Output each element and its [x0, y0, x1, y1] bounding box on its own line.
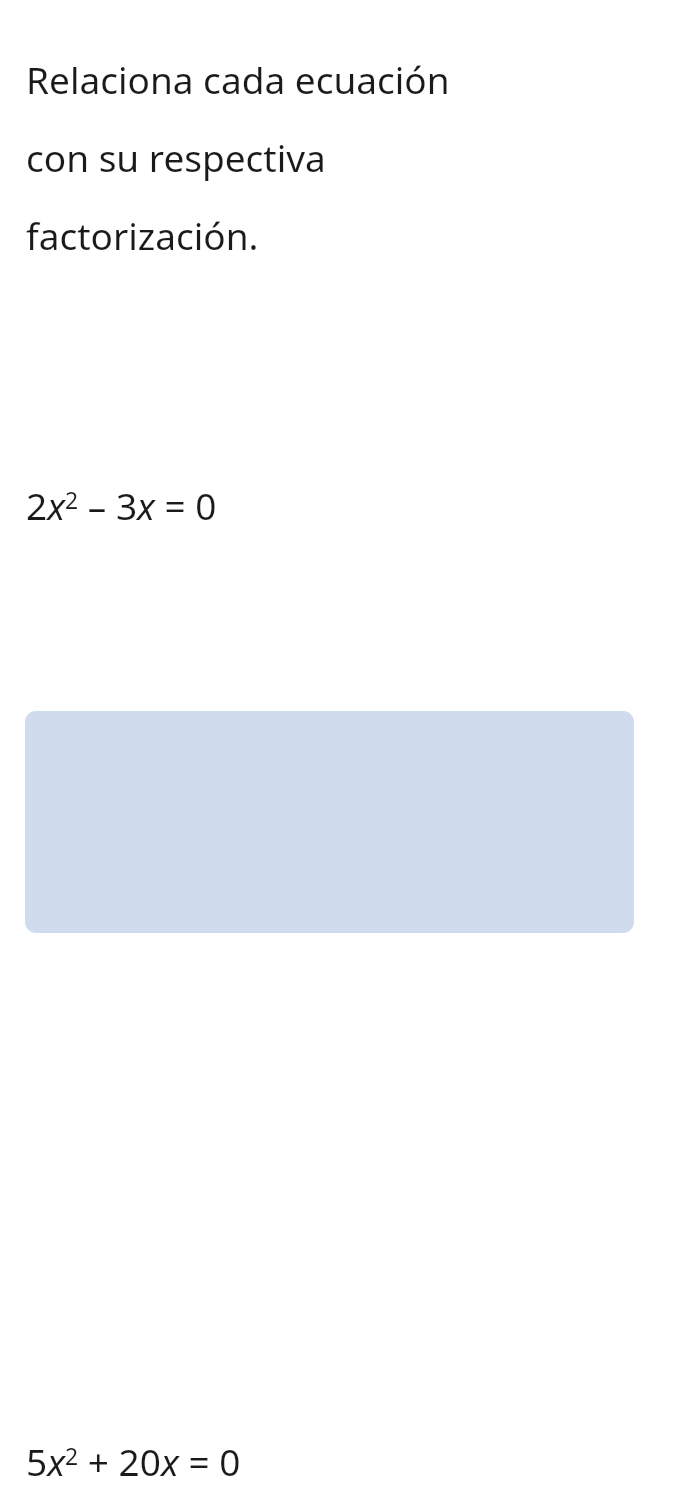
- staticText: con su respectiva: [26, 132, 326, 182]
- staticText: 5x2 + 20x = 0: [26, 1436, 241, 1486]
- staticText: 2x2 – 3x = 0: [26, 480, 217, 530]
- staticText: factorización.: [26, 210, 259, 260]
- staticText: Relaciona cada ecuación: [26, 54, 450, 104]
